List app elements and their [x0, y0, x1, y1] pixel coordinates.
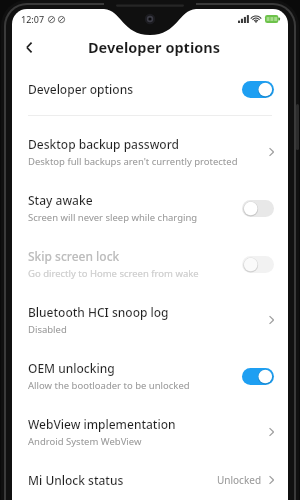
staticText: Bluetooth HCI snoop log	[28, 304, 169, 320]
staticText: Screen will never sleep while charging	[28, 211, 198, 224]
staticText: Stay awake	[28, 192, 93, 208]
button[interactable]: Developer options	[12, 69, 288, 109]
staticText: Go directly to Home screen from wake	[28, 267, 199, 280]
button[interactable]: Stay awake	[12, 180, 288, 236]
button[interactable]: Switch off	[242, 256, 274, 273]
button[interactable]: Mi Unlock status	[12, 460, 288, 500]
staticText: Mi Unlock status	[28, 472, 124, 488]
staticText: Desktop full backups aren't currently pr…	[28, 155, 238, 168]
button[interactable]: OEM unlocking	[12, 348, 288, 404]
button[interactable]: Bluetooth HCI snoop log	[12, 292, 288, 348]
button[interactable]: Skip screen lock	[12, 236, 288, 292]
staticText: Unlocked	[217, 473, 262, 487]
button[interactable]: Switch on	[242, 368, 274, 385]
button[interactable]: Switch on	[242, 81, 274, 98]
button[interactable]: Desktop backup password	[12, 124, 288, 180]
staticText: 12:07	[21, 13, 45, 25]
button[interactable]: Back	[12, 30, 46, 64]
staticText: Allow the bootloader to be unlocked	[28, 379, 190, 392]
staticText: WebView implementation	[28, 416, 176, 432]
button[interactable]: Switch off	[242, 200, 274, 217]
staticText: Developer options	[28, 81, 134, 97]
staticText: Developer options	[88, 37, 220, 57]
button[interactable]: WebView implementation	[12, 404, 288, 460]
staticText: Desktop backup password	[28, 136, 179, 152]
staticText: Skip screen lock	[28, 248, 120, 264]
staticText: Android System WebView	[28, 435, 142, 448]
staticText: OEM unlocking	[28, 360, 115, 376]
staticText: Disabled	[28, 323, 67, 336]
